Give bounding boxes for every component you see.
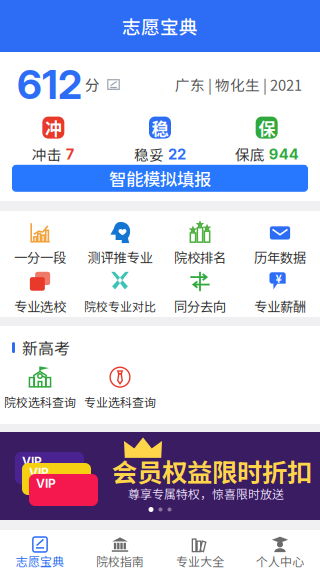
staticText: 保底 — [235, 144, 265, 165]
staticText: 院校专业对比 — [84, 297, 156, 315]
staticText: 冲击 — [32, 144, 62, 165]
staticText: VIP — [36, 476, 56, 490]
staticText: 志愿宝典 — [16, 552, 64, 569]
staticText: 专业选科查询 — [84, 393, 156, 410]
button[interactable]: VIP — [0, 432, 320, 520]
staticText: 尊享专属特权，惊喜限时放送 — [128, 485, 284, 502]
staticText: 22 — [168, 145, 186, 163]
button[interactable]: 院校排名 — [160, 218, 240, 267]
button[interactable]: 院校指南 — [80, 530, 160, 569]
staticText: 院校选科查询 — [4, 393, 76, 410]
staticText: 新高考 — [22, 336, 70, 359]
staticText: 专业大全 — [176, 552, 224, 569]
staticText: 历年数据 — [254, 247, 306, 267]
button[interactable]: 编辑成绩 — [100, 74, 122, 95]
button[interactable]: 专业大全 — [160, 530, 240, 569]
staticText: 智能模拟填报 — [109, 166, 211, 191]
staticText: 冲 — [45, 115, 62, 140]
button[interactable]: 院校选科查询 — [0, 363, 80, 412]
staticText: 稳 — [151, 115, 168, 140]
staticText: 专业薪酬 — [254, 296, 306, 316]
staticText: 稳妥 — [134, 144, 164, 165]
staticText: 一分一段 — [14, 247, 66, 267]
staticText: 志愿宝典 — [122, 12, 198, 39]
staticText: 院校指南 — [96, 552, 144, 569]
staticText: 612 — [17, 60, 82, 109]
staticText: 会员权益限时折扣 — [112, 453, 312, 489]
staticText: 测评推专业 — [87, 247, 152, 267]
staticText: 分 — [85, 74, 100, 95]
button[interactable]: 专业选科查询 — [80, 363, 160, 412]
button[interactable]: 测评推专业 — [80, 218, 160, 267]
staticText: VIP — [22, 454, 42, 468]
button[interactable]: 历年数据 — [240, 218, 320, 267]
staticText: 专业选校 — [14, 296, 66, 316]
staticText: ¥ — [275, 270, 281, 286]
button[interactable]: 保 — [213, 117, 320, 165]
staticText: 院校排名 — [174, 247, 226, 267]
staticText: 保 — [258, 115, 275, 140]
staticText: 944 — [269, 145, 299, 163]
button[interactable]: ¥ — [240, 267, 320, 316]
button[interactable]: 智能模拟填报 — [12, 165, 308, 192]
button[interactable]: 稳 — [107, 117, 213, 165]
button[interactable]: 一分一段 — [0, 218, 80, 267]
button[interactable]: 同分去向 — [160, 267, 240, 316]
button[interactable]: 志愿宝典 — [0, 530, 80, 569]
button[interactable]: 冲 — [0, 117, 107, 165]
staticText: 7 — [66, 145, 75, 163]
staticText: VIP — [29, 465, 49, 479]
staticText: 同分去向 — [174, 296, 226, 316]
button[interactable]: 专业选校 — [0, 267, 80, 316]
button[interactable]: 院校专业对比 — [80, 267, 160, 316]
staticText: 个人中心 — [256, 552, 304, 569]
staticText: 广东 | 物化生 | 2021 — [175, 74, 302, 95]
button[interactable]: 个人中心 — [240, 530, 320, 569]
